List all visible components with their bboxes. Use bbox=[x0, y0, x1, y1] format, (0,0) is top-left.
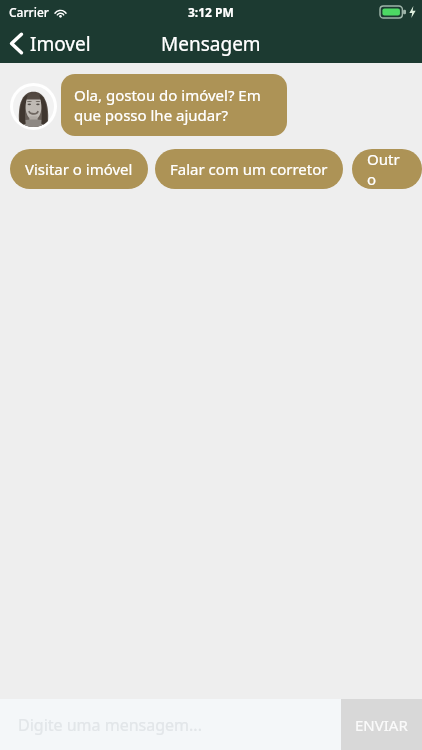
staticText: Carrier bbox=[9, 4, 49, 20]
button[interactable]: Digite uma mensagem... bbox=[0, 699, 341, 750]
staticText: Imovel bbox=[30, 31, 91, 57]
staticText: ENVIAR bbox=[355, 715, 408, 735]
staticText: Mensagem bbox=[161, 31, 261, 57]
staticText: Visitar o imóvel bbox=[25, 159, 133, 179]
staticText: Ola, gostou do imóvel? Em que posso lhe … bbox=[74, 85, 274, 125]
button[interactable]: Outro bbox=[352, 149, 422, 189]
button[interactable]: Visitar o imóvel bbox=[10, 149, 148, 189]
button[interactable]: ENVIAR bbox=[341, 699, 422, 750]
button[interactable]: Ola, gostou do imóvel? Em que posso lhe … bbox=[61, 74, 287, 136]
button[interactable]: Falar com um corretor bbox=[155, 149, 343, 189]
staticText: Digite uma mensagem... bbox=[18, 714, 202, 736]
staticText: Outro bbox=[367, 149, 407, 189]
staticText: 3:12 PM bbox=[188, 4, 234, 20]
staticText: Falar com um corretor bbox=[170, 159, 328, 179]
button[interactable]: Imovel bbox=[0, 24, 103, 63]
other: Agent avatar bbox=[10, 83, 57, 130]
